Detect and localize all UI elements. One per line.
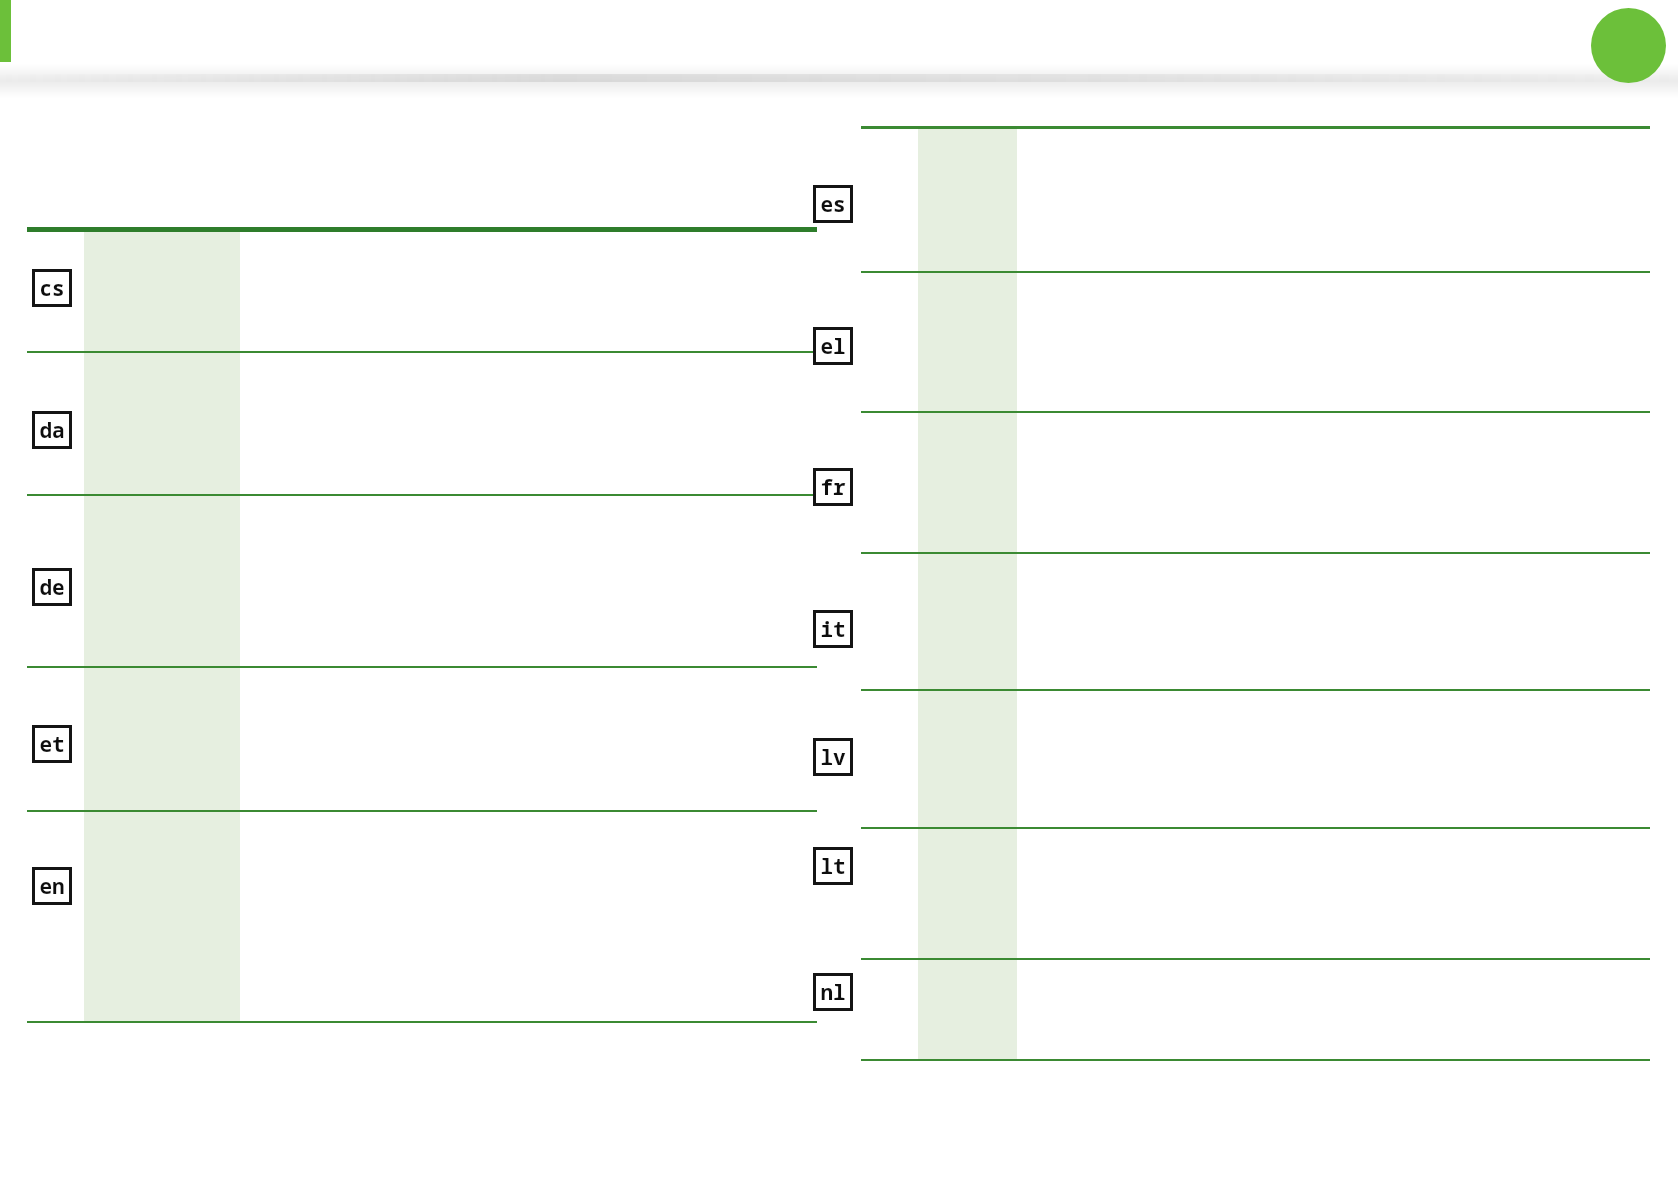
staticText: nl	[820, 978, 846, 1007]
staticText: et	[39, 730, 65, 759]
button[interactable]: Language code it	[813, 610, 853, 648]
button[interactable]: Language code fr	[813, 468, 853, 506]
staticText: lv	[820, 743, 846, 772]
button[interactable]: Language code nl	[813, 973, 853, 1011]
staticText: it	[820, 615, 846, 644]
button[interactable]: Language code lt	[813, 847, 853, 885]
button[interactable]: Language code lv	[813, 738, 853, 776]
staticText: es	[820, 190, 846, 219]
button[interactable]: Language code el	[813, 327, 853, 365]
staticText: el	[820, 332, 846, 361]
staticText: fr	[820, 473, 846, 502]
staticText: de	[39, 573, 65, 602]
button[interactable]: Language code en	[32, 867, 72, 905]
button[interactable]: Language code et	[32, 725, 72, 763]
staticText: da	[39, 416, 65, 445]
button[interactable]: Language code cs	[32, 269, 72, 307]
button[interactable]: Language code de	[32, 568, 72, 606]
staticText: cs	[39, 274, 65, 303]
button[interactable]: Language code es	[813, 185, 853, 223]
staticText: en	[39, 872, 65, 901]
button[interactable]: Language code da	[32, 411, 72, 449]
staticText: lt	[820, 852, 846, 881]
button[interactable]: Page number badge	[1591, 8, 1666, 83]
